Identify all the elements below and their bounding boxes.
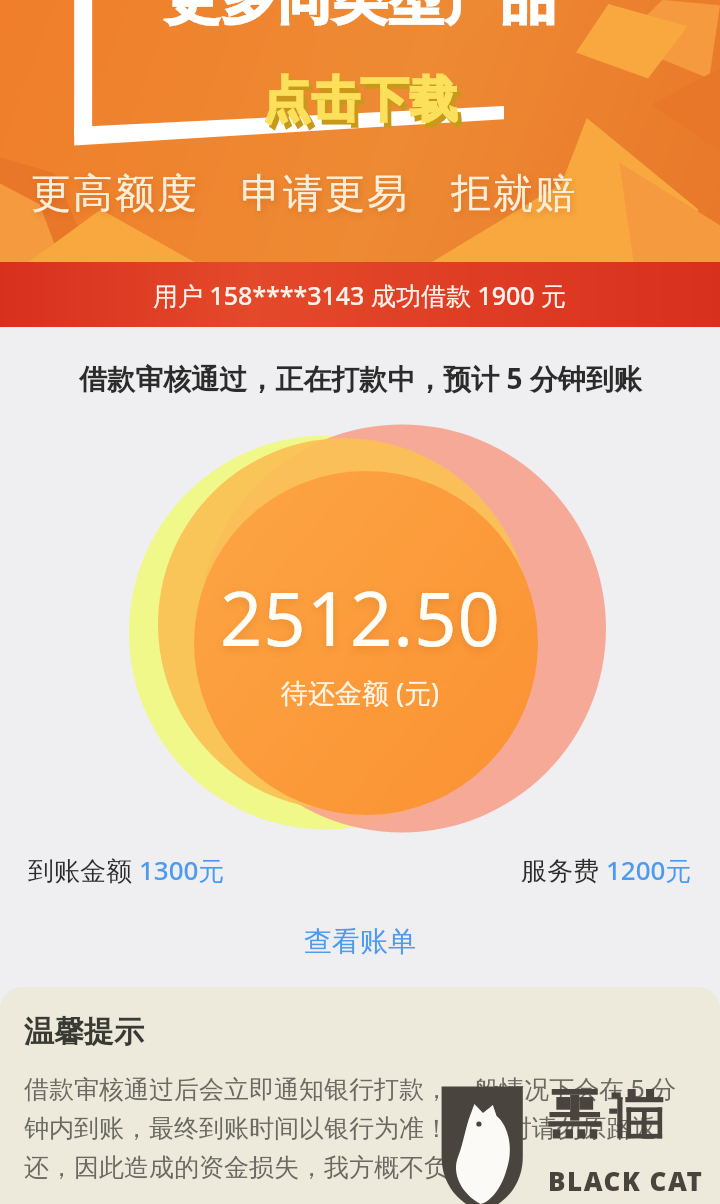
staticText: 点击下载	[266, 75, 462, 135]
staticText: 2512.50	[220, 567, 501, 668]
staticText: 待还金额 (元)	[281, 674, 440, 711]
staticText: 点击下载	[262, 70, 458, 130]
staticText: 服务费	[521, 852, 606, 888]
staticText: 温馨提示	[24, 1013, 144, 1051]
staticText: BLACK CAT	[548, 1163, 704, 1198]
staticText: 更多同类型产品	[164, 0, 556, 34]
staticText: 借款审核通过后会立即通知银行打款，一般情况下会在 5 分钟内到账，最终到账时间以…	[24, 1071, 696, 1183]
staticText: 用户 158****3143 成功借款 1900 元	[153, 278, 567, 312]
other: Black Cat watermark	[430, 1079, 720, 1204]
staticText: 到账金额	[28, 852, 139, 888]
staticText: 1300元	[139, 852, 225, 888]
button[interactable]: 更多同类型产品	[0, 0, 720, 262]
staticText: 申请更易	[240, 168, 408, 218]
staticText: 借款审核通过，正在打款中，预计 5 分钟到账	[79, 359, 642, 397]
staticText: 拒就赔	[450, 168, 576, 218]
staticText: 更高额度	[30, 168, 198, 218]
button[interactable]: 查看账单	[290, 918, 430, 965]
staticText: 1200元	[606, 852, 692, 888]
staticText: 查看账单	[304, 924, 416, 959]
